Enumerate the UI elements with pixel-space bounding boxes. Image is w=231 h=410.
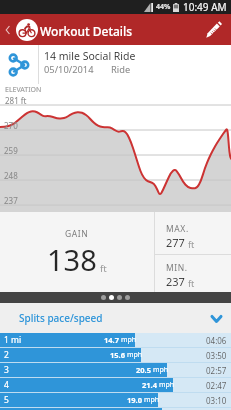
staticText: 14.7: [104, 335, 119, 345]
staticText: mph: [127, 350, 143, 360]
button[interactable]: Page 3: [117, 295, 122, 300]
staticText: 20.5: [136, 365, 151, 375]
staticText: mph: [159, 380, 175, 390]
staticText: mph: [148, 408, 164, 410]
staticText: 19.0: [127, 395, 142, 405]
staticText: MIN.: [166, 262, 188, 274]
button[interactable]: 6: [0, 408, 231, 410]
staticText: 138: [47, 240, 97, 279]
button[interactable]: Route: [0, 45, 38, 84]
staticText: GAIN: [65, 228, 89, 240]
staticText: 5: [4, 394, 9, 406]
staticText: 277: [166, 235, 185, 250]
staticText: ELEVATION: [5, 85, 42, 95]
staticText: 237: [166, 274, 185, 289]
staticText: 03:50: [206, 350, 227, 361]
staticText: mph: [144, 395, 160, 405]
button[interactable]: 2: [0, 348, 231, 362]
staticText: 2: [4, 349, 9, 361]
staticText: ft: [188, 238, 195, 250]
staticText: mph: [121, 335, 137, 345]
staticText: 21.4: [142, 380, 157, 390]
staticText: Splits pace/speed: [19, 311, 103, 325]
button[interactable]: 4: [0, 378, 231, 392]
staticText: ft: [188, 277, 195, 289]
staticText: 04:06: [206, 335, 227, 346]
button[interactable]: 1 mi: [0, 333, 231, 347]
staticText: 02:57: [206, 365, 227, 376]
staticText: 259: [4, 145, 18, 156]
button[interactable]: 5: [0, 393, 231, 407]
staticText: 03:10: [206, 395, 227, 406]
staticText: ft: [100, 262, 107, 275]
staticText: 3: [4, 364, 9, 376]
button[interactable]: Splits pace/speed: [0, 303, 231, 333]
staticText: Ride: [111, 63, 131, 76]
button[interactable]: Edit: [197, 14, 231, 45]
staticText: 15.6: [110, 350, 125, 360]
staticText: 270: [4, 120, 18, 131]
staticText: 14 mile Social Ride: [44, 49, 136, 63]
button[interactable]: Page 4: [125, 295, 130, 300]
button[interactable]: Back: [0, 14, 16, 45]
staticText: 44%: [156, 2, 171, 12]
staticText: MAX.: [166, 223, 189, 235]
staticText: 02:47: [206, 380, 227, 391]
staticText: 4: [4, 379, 9, 391]
staticText: 237: [4, 195, 18, 206]
button[interactable]: Page 1: [101, 295, 106, 300]
button[interactable]: 3: [0, 363, 231, 377]
staticText: Workout Details: [40, 23, 133, 39]
staticText: 10:49 AM: [183, 0, 227, 14]
staticText: 281 ft: [5, 95, 27, 106]
staticText: 248: [4, 170, 18, 181]
staticText: 1 mi: [4, 334, 22, 346]
staticText: mph: [153, 365, 169, 375]
staticText: 05/10/2014: [44, 63, 94, 76]
button[interactable]: Page 2: [109, 295, 114, 300]
